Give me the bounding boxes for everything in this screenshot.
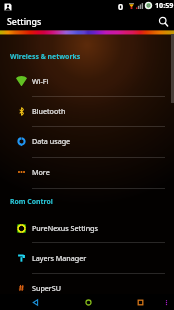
button[interactable]: PureNexus Settings — [0, 213, 174, 243]
staticText: SuperSU — [32, 283, 62, 293]
button[interactable]: More — [0, 157, 174, 187]
staticText: Wireless & networks — [10, 52, 81, 61]
button[interactable]: Bluetooth — [0, 96, 174, 126]
button[interactable]: Search — [157, 15, 170, 28]
button[interactable]: SuperSU — [0, 273, 174, 303]
button[interactable]: Home — [71, 294, 105, 310]
button[interactable]: Back — [18, 294, 52, 310]
button[interactable]: More options — [158, 294, 174, 310]
staticText: Rom Control — [10, 197, 53, 206]
staticText: Bluetooth — [32, 106, 66, 116]
button[interactable]: Data usage — [0, 126, 174, 156]
button[interactable]: Recent apps — [123, 294, 157, 310]
staticText: Layers Manager — [32, 253, 87, 263]
staticText: PureNexus Settings — [32, 223, 98, 233]
staticText: Data usage — [32, 136, 71, 146]
button[interactable]: Layers Manager — [0, 243, 174, 273]
staticText: 0 — [118, 0, 124, 12]
staticText: Wi-Fi — [32, 76, 49, 86]
staticText: Settings — [7, 16, 42, 28]
staticText: More — [32, 167, 50, 177]
staticText: 10:59 — [155, 0, 174, 10]
button[interactable]: Wi-Fi — [0, 66, 174, 96]
